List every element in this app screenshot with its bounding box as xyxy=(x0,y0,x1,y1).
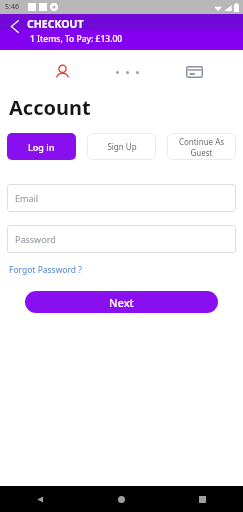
staticText: Next xyxy=(109,295,134,310)
staticText: Password xyxy=(15,233,56,245)
button[interactable]: Continue As Guest xyxy=(167,133,236,160)
button[interactable]: Recent apps xyxy=(162,486,243,512)
button[interactable]: Password xyxy=(7,225,236,253)
staticText: Continue As Guest xyxy=(170,136,233,158)
button[interactable]: Account step xyxy=(50,60,74,84)
staticText: 5:46 xyxy=(5,2,19,12)
button[interactable]: Back xyxy=(0,486,81,512)
staticText: Email xyxy=(15,192,39,204)
staticText: 1 Items, To Pay: £13.00 xyxy=(30,33,123,45)
button[interactable]: Log in xyxy=(7,133,76,160)
button[interactable]: Sign Up xyxy=(87,133,156,160)
button[interactable]: Home xyxy=(81,486,162,512)
staticText: Sign Up xyxy=(107,141,137,152)
button[interactable]: Next xyxy=(25,291,218,313)
button[interactable]: Email xyxy=(7,184,236,212)
staticText: Account xyxy=(9,94,91,121)
button[interactable]: Forgot Password ? xyxy=(9,264,82,276)
staticText: Log in xyxy=(28,141,55,153)
button[interactable]: Back xyxy=(5,16,25,36)
staticText: CHECKOUT xyxy=(27,17,84,31)
button[interactable]: Payment step xyxy=(181,59,207,85)
